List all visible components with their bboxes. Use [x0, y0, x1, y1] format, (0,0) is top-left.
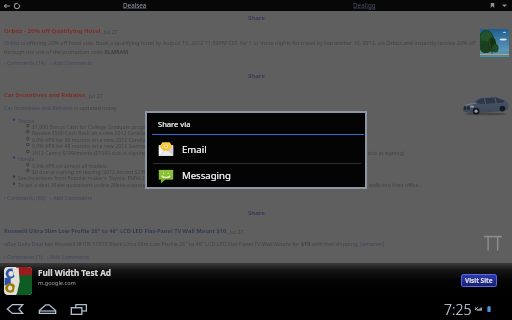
staticText: Dealigg: [353, 1, 376, 10]
staticText: Share: [248, 72, 265, 80]
button[interactable]: Refresh: [12, 1, 21, 10]
button[interactable]: More options: [500, 1, 509, 10]
button[interactable]: Recent apps: [67, 300, 91, 318]
staticText: 2012 Camry $199/month ($1999 due at sign…: [32, 149, 405, 156]
staticText: Full Width Test Ad: [38, 267, 112, 278]
staticText: , Jul 27: [227, 228, 244, 235]
staticText: Car Incentives and Rebates is updated to…: [4, 104, 118, 111]
staticText: 7:25: [444, 300, 472, 319]
staticText: Share: [248, 14, 265, 22]
staticText: See Incentives from Popular makers: Toyo…: [18, 174, 252, 181]
button[interactable]: Dealsea: [105, 0, 165, 11]
button[interactable]: Dealigg: [334, 0, 394, 11]
staticText: Orbitz is offering 20% off hotel stay. B…: [4, 39, 480, 55]
staticText: Dealsea: [123, 1, 147, 10]
staticText: To get a deal, Make quotations online (M…: [18, 181, 420, 188]
staticText: Messaging: [182, 169, 231, 182]
button[interactable]: Back: [2, 1, 11, 10]
staticText: Rosewill Ultra Slim Low Profile 26" to 4…: [4, 227, 227, 235]
button[interactable]: Messaging: [147, 164, 365, 187]
staticText: 0.0% APR for 48 months on a new 2012 Sie…: [32, 142, 145, 149]
staticText: Car Incentives and Rebates: [4, 91, 86, 99]
button[interactable]: › Add Comments: [47, 253, 90, 260]
button[interactable]: › Comments (60): [4, 194, 46, 201]
staticText: $1,000 Bonus Cash for College Graduate p…: [32, 123, 153, 130]
button[interactable]: Email: [147, 135, 365, 163]
button[interactable]: Visit Site: [465, 276, 493, 285]
staticText: Toyota: [18, 117, 35, 124]
staticText: 0.9% APR on almost all models: [32, 162, 107, 169]
button[interactable]: › Add Comments: [50, 194, 93, 201]
staticText: Email: [182, 143, 207, 156]
staticText: $0 due at signing on leasing; 2012 Accor…: [32, 168, 223, 175]
staticText: Receive $500 Cash Back on a new 2012 Cor…: [32, 129, 145, 136]
staticText: eBay Daily Deal has Rosewill RHTB-11010 …: [4, 240, 384, 247]
staticText: , Jul 27: [101, 28, 118, 35]
button[interactable]: Bookmarks: [488, 1, 497, 10]
button[interactable]: › Add Comments: [50, 59, 93, 66]
staticText: Orbitz - 20% off Qualifying Hotel: [4, 27, 101, 35]
button[interactable]: › Comments (1): [4, 253, 43, 260]
staticText: Share: [248, 209, 265, 217]
staticText: , Jul 27: [86, 92, 103, 99]
button[interactable]: Back: [3, 300, 27, 318]
staticText: Honda: [18, 155, 35, 162]
staticText: Share via: [158, 119, 191, 129]
button[interactable]: Home: [35, 300, 59, 318]
staticText: 0.0% APR for 36 months on a new 2012 Cor…: [32, 136, 146, 143]
staticText: m.google.com: [38, 279, 76, 287]
staticText: Visit Site: [465, 276, 493, 285]
button[interactable]: › Comments (14): [4, 59, 46, 66]
button[interactable]: Full Width Test Ad: [0, 263, 512, 298]
